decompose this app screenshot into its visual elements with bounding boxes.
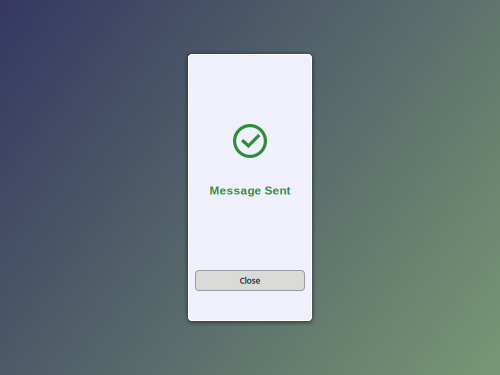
staticText: Message Sent	[209, 184, 290, 197]
button[interactable]: Close	[195, 270, 305, 291]
staticText: Close	[239, 275, 260, 286]
